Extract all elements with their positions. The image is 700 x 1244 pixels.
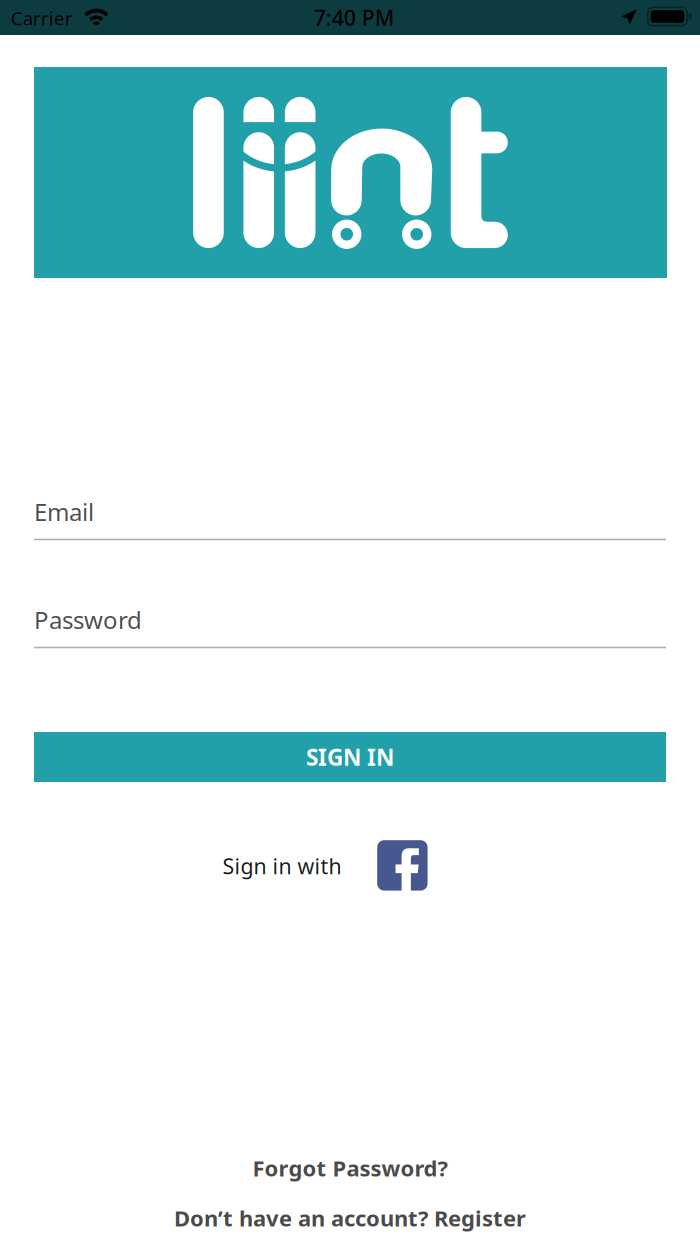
staticText: SIGN IN [306, 742, 394, 772]
button[interactable]: Don’t have an account? Register [174, 1197, 526, 1239]
staticText: 7:40 PM [314, 3, 395, 32]
staticText: Forgot Password? [252, 1153, 447, 1183]
staticText: Carrier [11, 6, 73, 30]
button[interactable]: SIGN IN [34, 732, 666, 782]
staticText: Don’t have an account? Register [174, 1203, 526, 1233]
button[interactable]: Sign in with Facebook [377, 840, 428, 891]
staticText: Email [34, 496, 94, 528]
button[interactable]: Forgot Password? [252, 1147, 447, 1189]
staticText: Sign in with [222, 851, 341, 881]
staticText: Password [34, 604, 142, 636]
